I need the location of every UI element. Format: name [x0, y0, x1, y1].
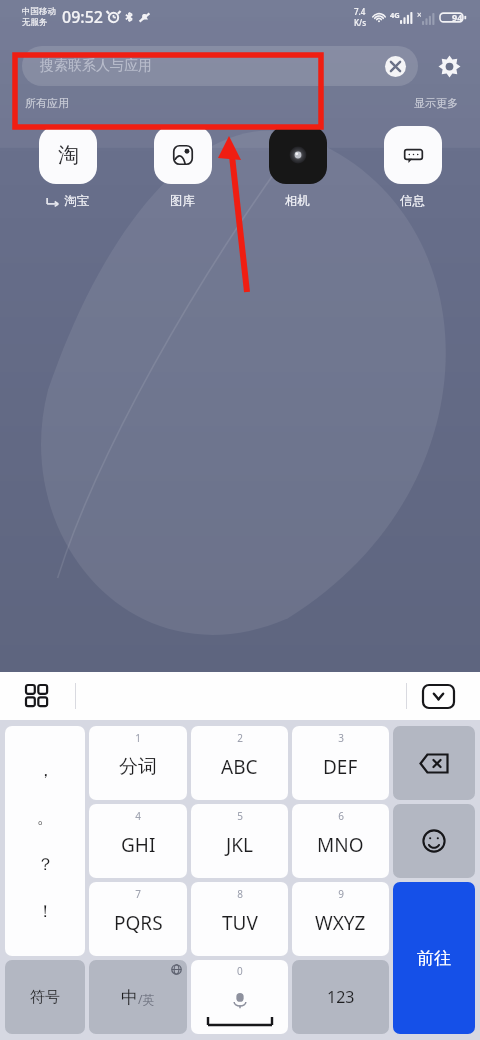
- staticText: 中: [121, 987, 138, 1008]
- staticText: /英: [138, 991, 155, 1007]
- staticText: ？: [37, 854, 54, 875]
- staticText: 无服务: [22, 17, 48, 28]
- staticText: ABC: [221, 754, 258, 780]
- staticText: 9: [338, 887, 344, 901]
- button[interactable]: 信息: [355, 126, 470, 209]
- button[interactable]: 前往: [393, 882, 475, 1034]
- staticText: 显示更多: [414, 96, 458, 110]
- staticText: 分词: [119, 755, 157, 779]
- staticText: ×: [417, 9, 422, 20]
- button[interactable]: Clear search: [382, 53, 408, 79]
- button[interactable]: 6: [292, 804, 389, 878]
- button[interactable]: ，: [5, 726, 85, 956]
- button[interactable]: 4: [89, 804, 187, 878]
- staticText: 图库: [170, 193, 195, 209]
- button[interactable]: 5: [191, 804, 288, 878]
- button[interactable]: 图库: [125, 126, 240, 209]
- staticText: 符号: [30, 988, 60, 1007]
- staticText: 3: [338, 731, 344, 745]
- button[interactable]: 3: [292, 726, 389, 800]
- staticText: 搜索联系人与应用: [40, 57, 152, 75]
- staticText: 94: [452, 11, 463, 23]
- staticText: 淘: [58, 142, 79, 168]
- staticText: 淘宝: [64, 193, 89, 209]
- button[interactable]: 相机: [240, 126, 355, 209]
- staticText: 5: [237, 809, 243, 823]
- staticText: 2: [237, 731, 243, 745]
- button[interactable]: Keyboard panels: [22, 681, 52, 711]
- button[interactable]: 1: [89, 726, 187, 800]
- staticText: K/s: [354, 17, 367, 28]
- staticText: 4: [135, 809, 141, 823]
- button[interactable]: 搜索联系人与应用: [22, 46, 418, 86]
- button[interactable]: 符号: [5, 960, 85, 1034]
- button[interactable]: Delete: [393, 726, 475, 800]
- button[interactable]: Settings: [432, 49, 466, 83]
- staticText: 6: [338, 809, 344, 823]
- staticText: 4G: [390, 10, 400, 20]
- staticText: MNO: [317, 832, 364, 858]
- button[interactable]: 123: [292, 960, 389, 1034]
- button[interactable]: Space / Voice input: [191, 960, 288, 1034]
- staticText: 中国移动: [22, 6, 56, 17]
- staticText: 1: [135, 731, 141, 745]
- staticText: 8: [237, 887, 243, 901]
- staticText: 。: [37, 807, 54, 828]
- staticText: JKL: [226, 832, 253, 858]
- button[interactable]: 2: [191, 726, 288, 800]
- staticText: WXYZ: [315, 910, 366, 936]
- staticText: 09:52: [62, 6, 103, 28]
- button[interactable]: 显示更多: [414, 96, 458, 110]
- staticText: ，: [37, 760, 54, 781]
- staticText: 信息: [400, 193, 425, 209]
- button[interactable]: 8: [191, 882, 288, 956]
- button[interactable]: Hide keyboard: [421, 679, 455, 713]
- staticText: 123: [327, 986, 355, 1008]
- staticText: 相机: [285, 193, 310, 209]
- staticText: PQRS: [114, 910, 163, 936]
- staticText: 7.4: [354, 6, 366, 17]
- button[interactable]: Emoji: [393, 804, 475, 878]
- button[interactable]: 淘: [10, 126, 125, 209]
- staticText: 7: [135, 887, 141, 901]
- staticText: ！: [37, 901, 54, 922]
- staticText: 前往: [417, 948, 451, 969]
- staticText: 0: [237, 964, 243, 978]
- button[interactable]: 7: [89, 882, 187, 956]
- staticText: TUV: [222, 910, 258, 936]
- staticText: DEF: [323, 754, 358, 780]
- staticText: 所有应用: [25, 96, 69, 110]
- staticText: GHI: [121, 832, 156, 858]
- button[interactable]: 中: [89, 960, 187, 1034]
- button[interactable]: 9: [292, 882, 389, 956]
